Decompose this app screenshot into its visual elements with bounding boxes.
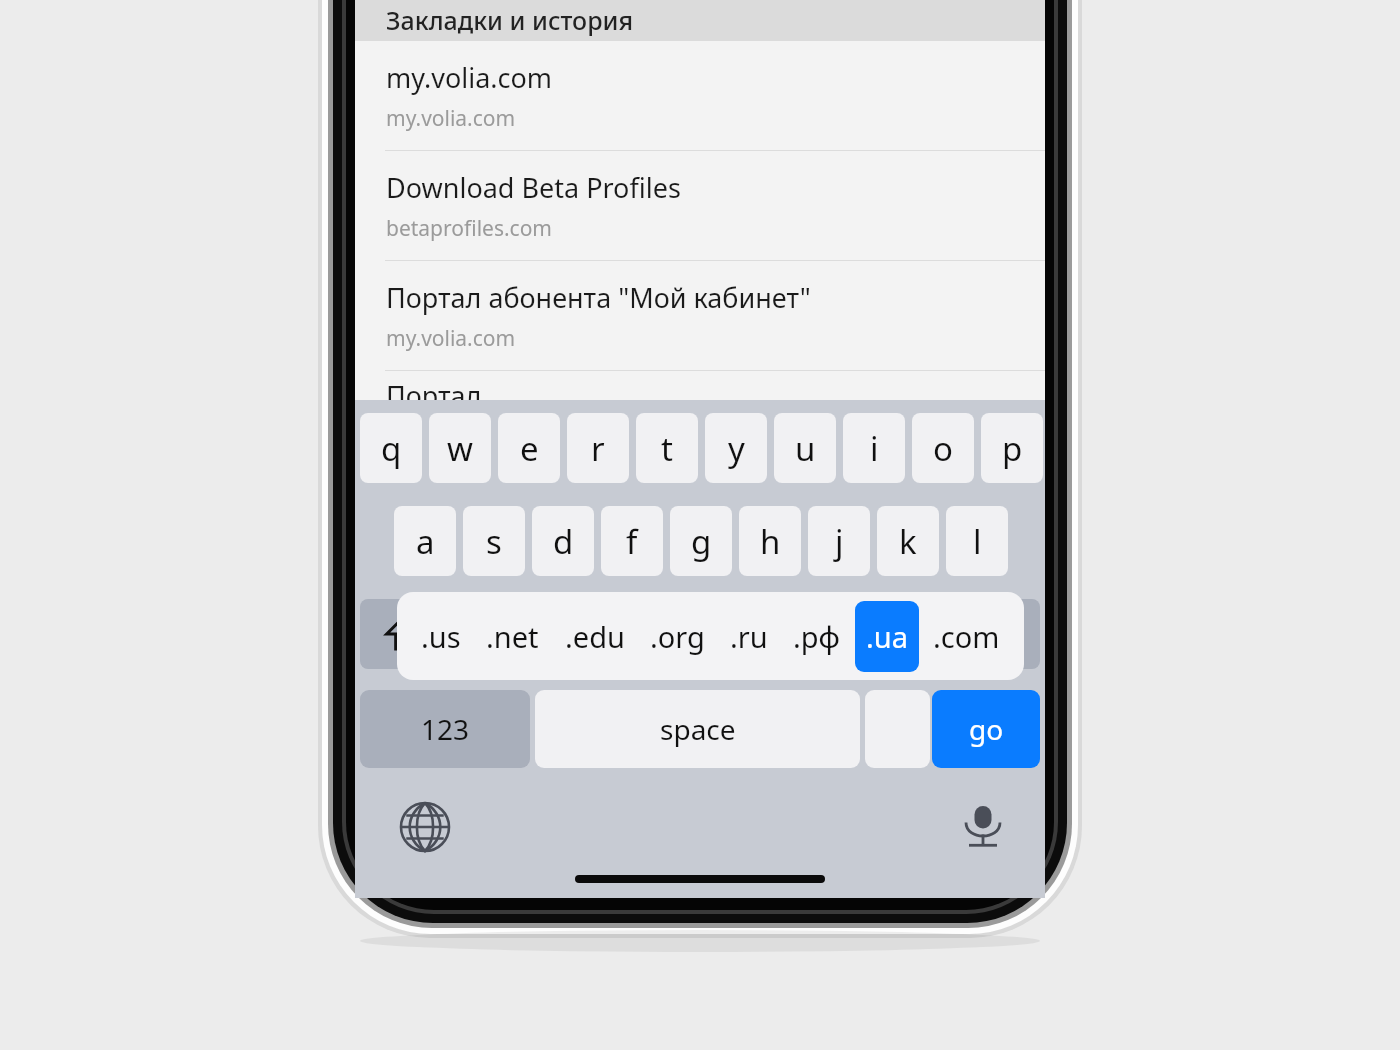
staticText: my.volia.com: [386, 59, 553, 96]
staticText: .net: [486, 617, 539, 656]
staticText: p: [1002, 426, 1023, 471]
button[interactable]: k: [877, 506, 939, 576]
button[interactable]: a: [394, 506, 456, 576]
staticText: .org: [650, 617, 705, 656]
staticText: g: [691, 519, 712, 564]
staticText: t: [661, 426, 673, 471]
staticText: my.volia.com: [386, 104, 516, 133]
staticText: y: [728, 426, 745, 471]
button[interactable]: .com: [922, 611, 1011, 662]
staticText: Портал: [386, 377, 482, 405]
staticText: my.volia.com: [386, 324, 516, 353]
staticText: j: [835, 519, 844, 564]
button[interactable]: Dictation: [955, 796, 1011, 852]
button[interactable]: d: [532, 506, 594, 576]
button[interactable]: u: [774, 413, 836, 483]
staticText: s: [486, 519, 502, 564]
staticText: w: [447, 426, 473, 471]
staticText: i: [870, 426, 879, 471]
button[interactable]: Портал абонента "Мой кабинет": [355, 261, 1045, 370]
staticText: l: [973, 519, 982, 564]
button[interactable]: space: [535, 690, 860, 768]
button[interactable]: r: [567, 413, 629, 483]
button[interactable]: Backspace: [956, 599, 1040, 669]
button[interactable]: y: [705, 413, 767, 483]
staticText: Закладки и история: [386, 3, 634, 37]
staticText: .com: [933, 617, 1000, 656]
staticText: .рф: [793, 617, 840, 656]
button[interactable]: f: [601, 506, 663, 576]
staticText: space: [660, 710, 736, 748]
staticText: o: [933, 426, 953, 471]
staticText: k: [899, 519, 917, 564]
staticText: a: [416, 519, 435, 564]
button[interactable]: Change keyboard language: [397, 799, 453, 855]
button[interactable]: j: [808, 506, 870, 576]
button[interactable]: e: [498, 413, 560, 483]
button[interactable]: .рф: [782, 611, 851, 662]
button[interactable]: t: [636, 413, 698, 483]
button[interactable]: 123: [360, 690, 530, 768]
button[interactable]: s: [463, 506, 525, 576]
staticText: .ua: [866, 617, 908, 656]
staticText: r: [591, 426, 605, 471]
staticText: e: [520, 426, 539, 471]
button[interactable]: g: [670, 506, 732, 576]
button[interactable]: .edu: [554, 611, 636, 662]
button[interactable]: h: [739, 506, 801, 576]
staticText: u: [795, 426, 816, 471]
button[interactable]: go: [932, 690, 1040, 768]
staticText: .edu: [565, 617, 625, 656]
staticText: .us: [421, 617, 461, 656]
button[interactable]: q: [360, 413, 422, 483]
button[interactable]: Shift: [360, 599, 444, 669]
button[interactable]: .ru: [719, 611, 779, 662]
button[interactable]: o: [912, 413, 974, 483]
button[interactable]: .ua: [855, 601, 919, 672]
button[interactable]: p: [981, 413, 1043, 483]
button[interactable]: my.volia.com: [355, 41, 1045, 150]
button[interactable]: .us: [410, 611, 472, 662]
button[interactable]: i: [843, 413, 905, 483]
staticText: f: [626, 519, 638, 564]
staticText: q: [381, 426, 402, 471]
staticText: betaprofiles.com: [386, 214, 553, 243]
staticText: .ru: [730, 617, 768, 656]
button[interactable]: .net: [475, 611, 550, 662]
staticText: go: [969, 710, 1004, 748]
button[interactable]: .org: [639, 611, 716, 662]
staticText: Портал абонента "Мой кабинет": [386, 279, 811, 316]
staticText: 123: [421, 710, 470, 748]
button[interactable]: Download Beta Profiles: [355, 151, 1045, 260]
staticText: d: [553, 519, 574, 564]
button[interactable]: w: [429, 413, 491, 483]
staticText: Download Beta Profiles: [386, 169, 681, 206]
button[interactable]: l: [946, 506, 1008, 576]
staticText: h: [760, 519, 781, 564]
